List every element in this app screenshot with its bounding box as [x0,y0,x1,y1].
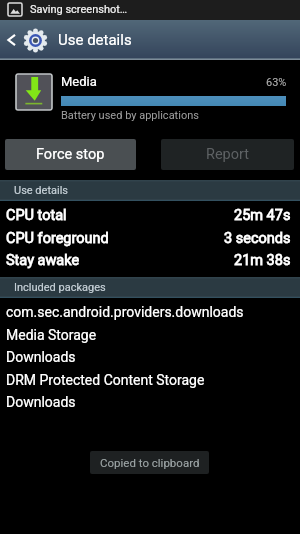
staticText: 25m 47s [234,207,291,224]
button[interactable]: Back [0,20,300,60]
staticText: DRM Protected Content Storage [6,372,205,388]
staticText: Stay awake [6,252,80,269]
staticText: Report [206,146,250,163]
button[interactable]: Report [161,139,294,170]
staticText: Media Storage [6,327,97,343]
staticText: Media [61,74,97,89]
button[interactable]: com.sec.android.providers.downloads [6,301,300,323]
button[interactable]: CPU foreground [6,227,291,249]
button[interactable]: Force stop [5,139,136,170]
button[interactable]: CPU total [6,204,291,226]
button[interactable]: Downloads [6,391,300,413]
staticText: Saving screenshot… [30,3,128,16]
staticText: CPU total [6,207,67,224]
staticText: Copied to clipboard [100,456,200,469]
staticText: 21m 38s [234,252,291,269]
staticText: Use details [58,31,132,49]
staticText: Use details [14,184,69,197]
button[interactable]: DRM Protected Content Storage [6,369,300,391]
button[interactable]: Downloads [6,346,300,368]
staticText: Included packages [14,281,106,294]
staticText: Downloads [6,394,76,410]
staticText: Downloads [6,349,76,365]
staticText: 63% [266,76,287,89]
staticText: com.sec.android.providers.downloads [6,304,244,320]
staticText: Battery used by applications [61,109,199,122]
button[interactable]: Stay awake [6,249,291,271]
staticText: Force stop [36,146,105,163]
other: Back [6,32,17,48]
button[interactable]: Media Storage [6,324,300,346]
staticText: CPU foreground [6,230,109,247]
staticText: 3 seconds [224,230,291,247]
